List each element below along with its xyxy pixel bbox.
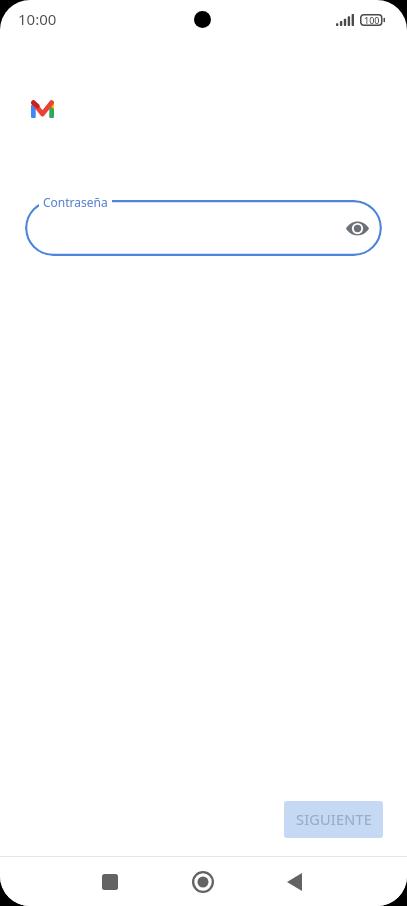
staticText: 10:00	[18, 9, 57, 29]
button[interactable]: Recientes	[85, 857, 134, 906]
button[interactable]: SIGUIENTE	[284, 801, 383, 838]
button[interactable]: Atrás	[270, 857, 319, 906]
staticText: SIGUIENTE	[296, 809, 372, 829]
button[interactable]: Mostrar contraseña	[340, 211, 374, 245]
button[interactable]: Mostrar contraseña	[25, 200, 382, 256]
staticText: Contraseña	[43, 194, 108, 210]
staticText: 100	[364, 14, 380, 26]
button[interactable]: Inicio	[178, 857, 227, 906]
